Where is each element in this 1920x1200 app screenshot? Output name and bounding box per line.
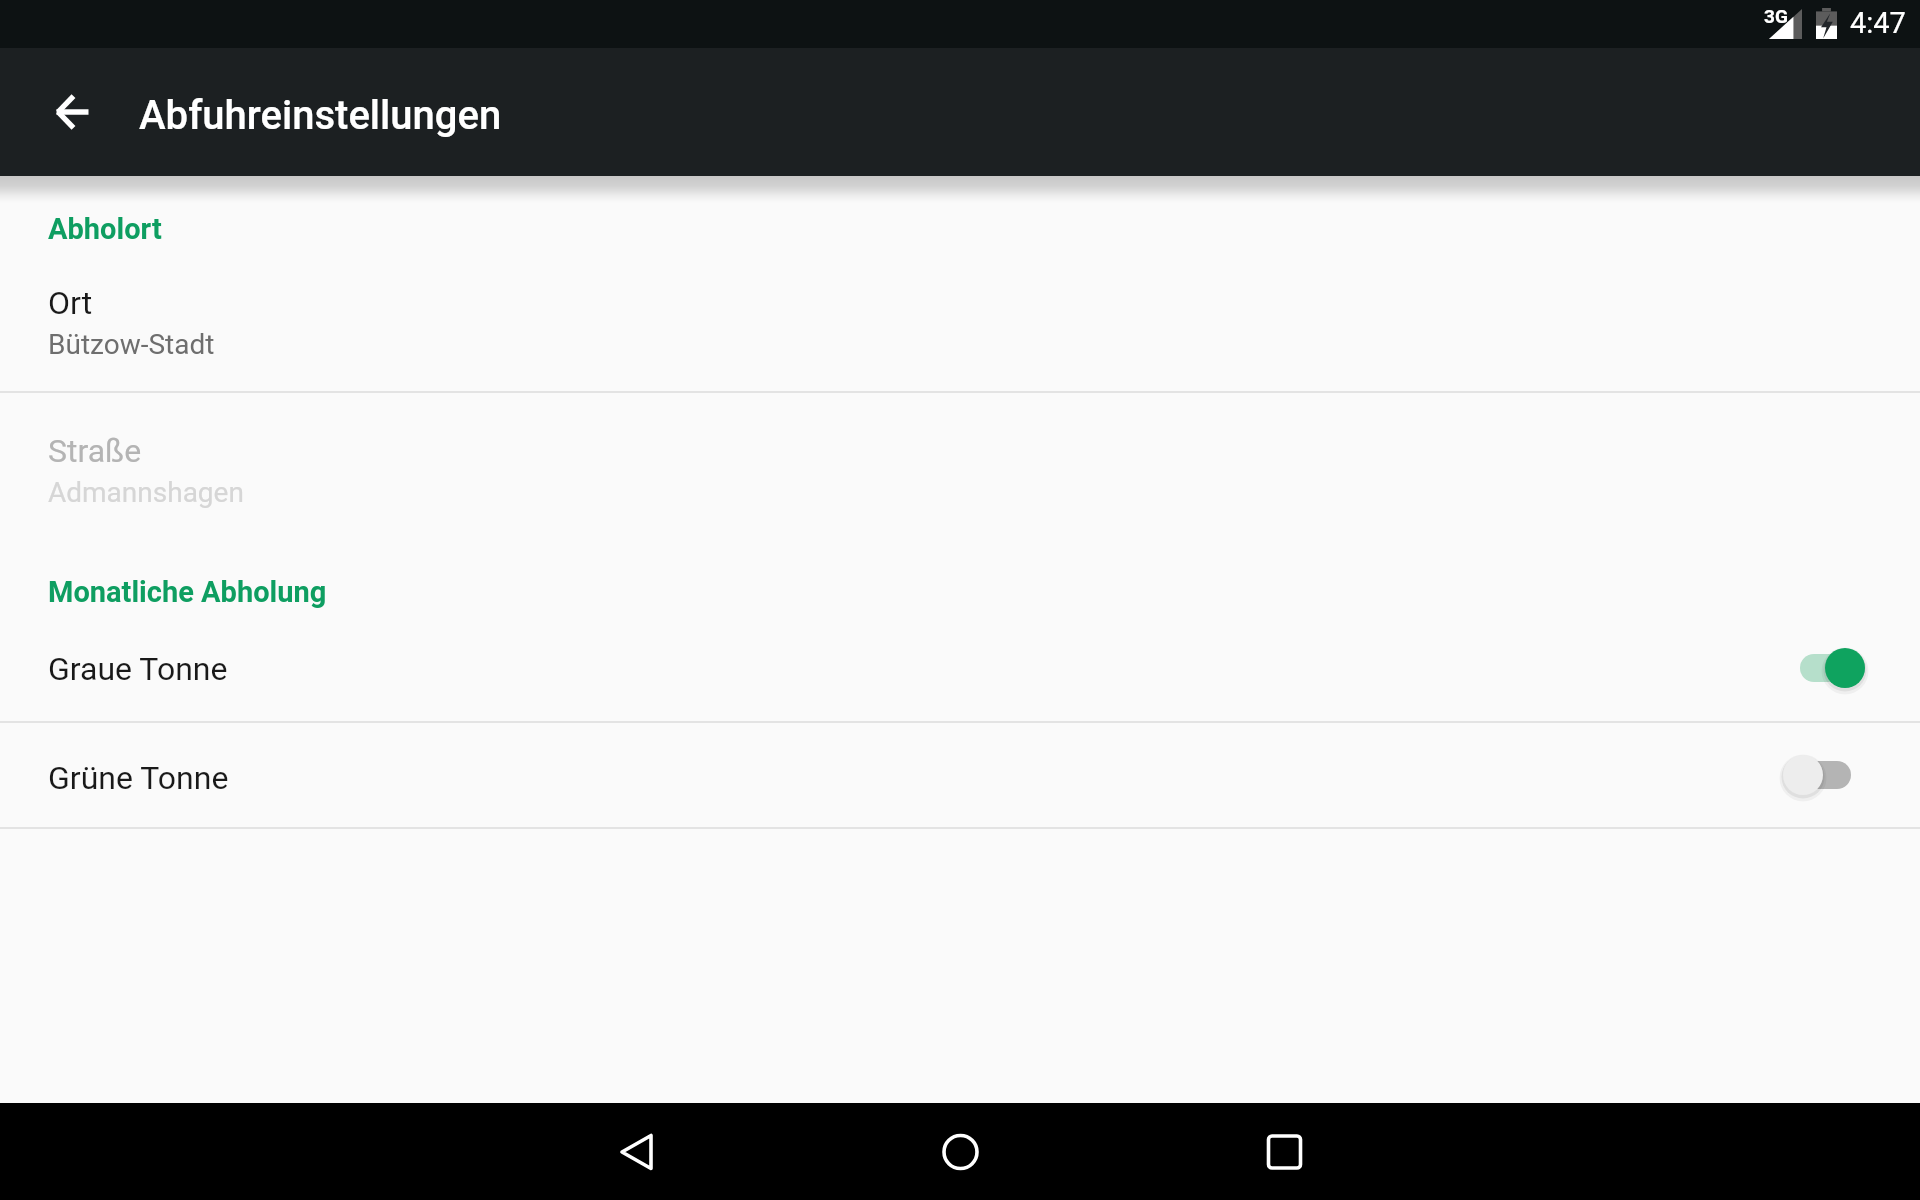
button[interactable]: Ort — [0, 238, 1920, 391]
button[interactable]: Grüne Tonne — [0, 723, 1920, 827]
staticText: Grüne Tonne — [48, 759, 229, 797]
button[interactable]: Graue Tonne — [0, 626, 1920, 721]
button[interactable]: Disabled — [1783, 747, 1855, 803]
button[interactable]: Enabled — [1794, 640, 1866, 696]
staticText: Straße — [48, 432, 142, 470]
staticText: 3G — [1764, 5, 1788, 27]
button[interactable]: Home — [912, 1104, 1008, 1200]
staticText: Abholort — [48, 212, 162, 246]
staticText: Admannshagen — [48, 476, 244, 509]
staticText: 4:47 — [1850, 6, 1906, 40]
staticText: Ort — [48, 284, 93, 322]
staticText: Graue Tonne — [48, 650, 228, 688]
button[interactable]: Recent apps — [1236, 1104, 1332, 1200]
staticText: Abfuhreinstellungen — [139, 92, 502, 139]
staticText: Bützow-Stadt — [48, 328, 215, 361]
button[interactable]: Back — [588, 1104, 684, 1200]
button[interactable]: Straße — [0, 393, 1920, 539]
button[interactable]: Navigate up — [28, 68, 116, 156]
staticText: Monatliche Abholung — [48, 575, 327, 609]
